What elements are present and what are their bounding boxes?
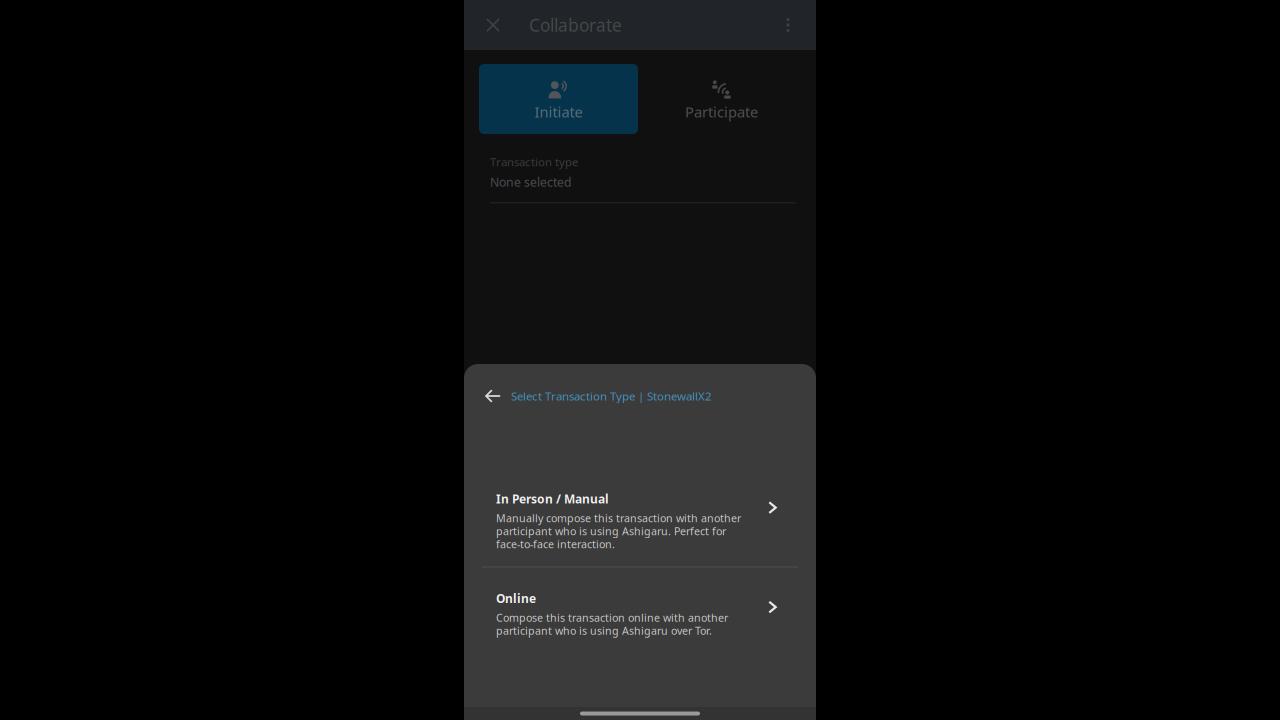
- staticText: face-to-face interaction.: [496, 537, 615, 551]
- staticText: participant who is using Ashigaru over T…: [496, 623, 712, 638]
- staticText: participant who is using Ashigaru. Perfe…: [496, 524, 726, 538]
- staticText: Initiate: [534, 102, 582, 121]
- staticText: Manually compose this transaction with a…: [496, 511, 741, 525]
- staticText: Select Transaction Type | StonewallX2: [511, 388, 712, 404]
- button[interactable]: Online: [464, 567, 816, 634]
- staticText: In Person / Manual: [496, 491, 609, 507]
- staticText: Compose this transaction online with ano…: [496, 610, 728, 625]
- button[interactable]: In Person / Manual: [464, 480, 816, 566]
- staticText: Participate: [685, 102, 758, 121]
- button[interactable]: Back: [475, 376, 511, 416]
- button[interactable]: Select Transaction Type | StonewallX2: [511, 388, 712, 404]
- button[interactable]: Initiate: [479, 64, 638, 134]
- button[interactable]: Participate: [642, 64, 801, 134]
- staticText: None selected: [490, 174, 572, 190]
- staticText: Collaborate: [529, 13, 622, 36]
- button[interactable]: Close: [468, 0, 518, 50]
- staticText: Transaction type: [490, 154, 578, 170]
- staticText: Online: [496, 590, 536, 606]
